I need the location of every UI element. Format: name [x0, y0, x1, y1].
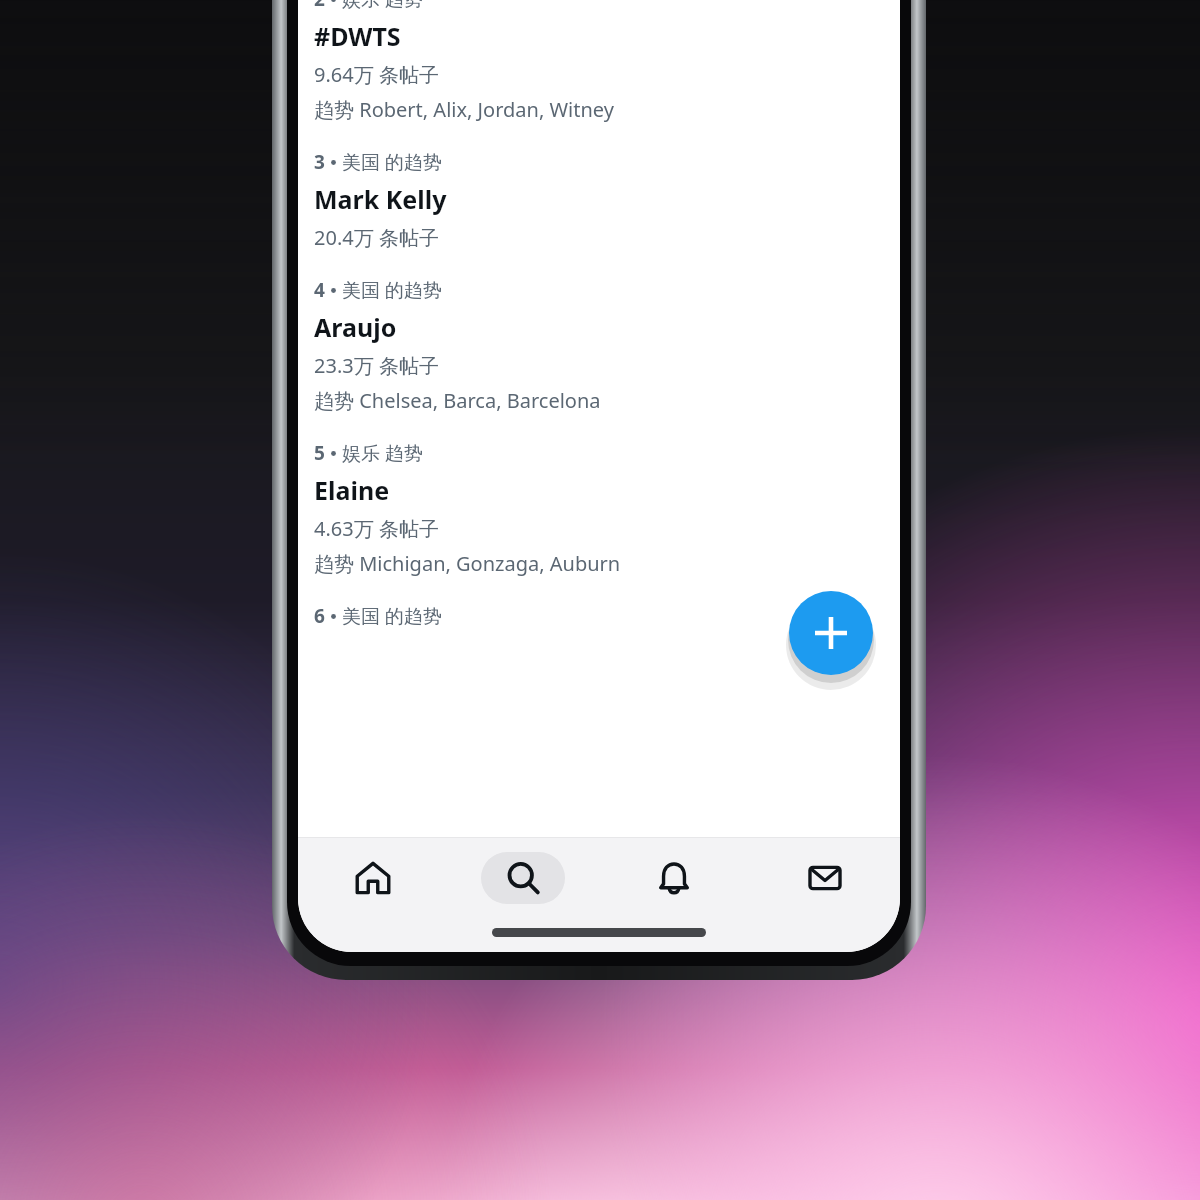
button[interactable]: 2 — [298, 0, 900, 133]
staticText: 2 — [314, 0, 325, 12]
staticText: 4 — [314, 277, 325, 303]
staticText: 6 — [314, 603, 325, 629]
staticText: 20.4万 条帖子 — [314, 224, 439, 251]
staticText: 美国 的趋势 — [342, 149, 442, 175]
button[interactable]: 5 — [298, 424, 900, 587]
button[interactable]: 3 — [298, 133, 900, 261]
staticText: Araujo — [314, 310, 397, 344]
staticText: Mark Kelly — [314, 182, 447, 216]
staticText: 趋势 Michigan, Gonzaga, Auburn — [314, 550, 621, 577]
button[interactable]: 6 — [298, 587, 900, 639]
staticText: 娱乐 趋势 — [342, 0, 423, 12]
staticText: 9.64万 条帖子 — [314, 61, 439, 88]
button[interactable]: Messages — [749, 838, 900, 918]
staticText: 趋势 Robert, Alix, Jordan, Witney — [314, 96, 614, 123]
staticText: 娱乐 趋势 — [342, 440, 423, 466]
staticText: Elaine — [314, 473, 390, 507]
button[interactable]: Search — [448, 838, 598, 918]
staticText: #DWTS — [314, 19, 401, 53]
staticText: 美国 的趋势 — [342, 603, 442, 629]
button[interactable]: Home — [298, 838, 448, 918]
button[interactable]: 4 — [298, 261, 900, 424]
staticText: 3 — [314, 149, 325, 175]
button[interactable]: Notifications — [598, 838, 749, 918]
staticText: 4.63万 条帖子 — [314, 515, 439, 542]
staticText: 5 — [314, 440, 325, 466]
staticText: 趋势 Chelsea, Barca, Barcelona — [314, 387, 601, 414]
button[interactable]: Compose new post — [789, 591, 873, 675]
staticText: 美国 的趋势 — [342, 277, 442, 303]
staticText: 23.3万 条帖子 — [314, 352, 439, 379]
